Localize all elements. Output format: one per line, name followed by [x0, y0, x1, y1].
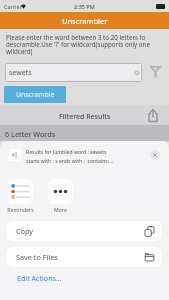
staticText: Carrier [4, 3, 22, 10]
button[interactable]: Close [150, 150, 160, 160]
button[interactable]: Unscramble [4, 86, 66, 103]
staticText: Unscrambler [62, 16, 108, 26]
button[interactable]: sewets [5, 63, 142, 82]
staticText: Copy [16, 226, 34, 236]
button[interactable]: Reminders [3, 179, 37, 213]
staticText: starts with : s ends with : contains:... [26, 158, 114, 165]
staticText: Reminders [7, 206, 34, 213]
staticText: Please enter the word between 3 to 20 le… [6, 33, 163, 55]
button[interactable]: Save to Files [7, 247, 162, 267]
button[interactable]: Copy [7, 221, 162, 241]
staticText: Save to Files [16, 252, 58, 262]
staticText: Unscramble [16, 90, 55, 99]
button[interactable]: More [43, 179, 77, 213]
staticText: 2:35 PM [74, 3, 95, 10]
staticText: Edit Actions... [17, 273, 62, 283]
staticText: More [54, 206, 67, 213]
staticText: Filtered Results [59, 112, 111, 122]
staticText: Results for Jumbled word : sewets [26, 149, 107, 156]
staticText: 6 Letter Words [5, 129, 56, 139]
button[interactable]: Filter [147, 64, 163, 80]
button[interactable]: Share [145, 107, 161, 123]
staticText: sewets [9, 68, 32, 78]
button[interactable]: Edit Actions... [17, 273, 62, 283]
